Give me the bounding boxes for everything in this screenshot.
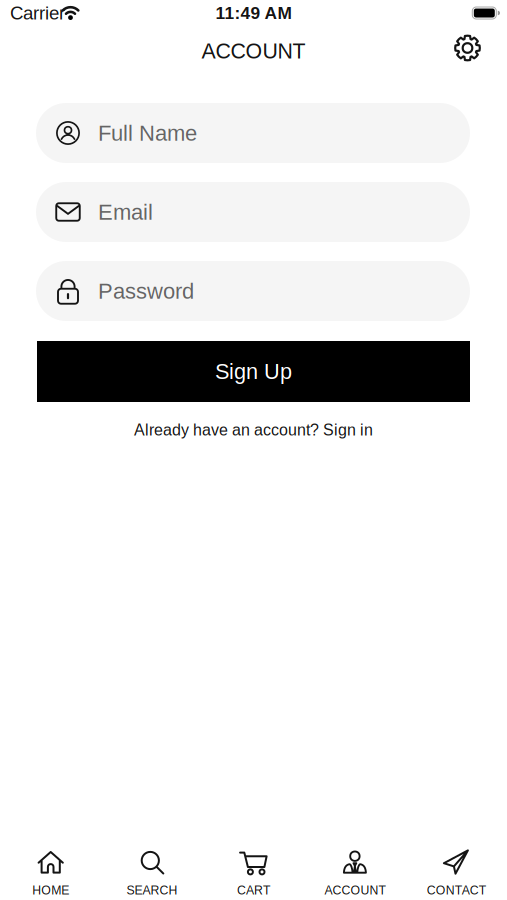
- staticText: HOME: [32, 883, 69, 897]
- staticText: ACCOUNT: [324, 883, 385, 897]
- staticText: Full Name: [98, 121, 197, 145]
- staticText: 11:49 AM: [215, 3, 291, 23]
- staticText: CONTACT: [427, 883, 486, 897]
- staticText: ACCOUNT: [201, 39, 305, 63]
- staticText: Password: [98, 279, 194, 303]
- staticText: Carrier: [10, 3, 65, 23]
- button[interactable]: ACCOUNT: [304, 844, 406, 900]
- button[interactable]: HOME: [0, 844, 101, 900]
- staticText: Already have an account? Sign in: [134, 421, 373, 439]
- button[interactable]: Full Name: [36, 103, 470, 163]
- staticText: CART: [237, 883, 270, 897]
- button[interactable]: CONTACT: [406, 844, 507, 900]
- button[interactable]: Sign Up: [37, 341, 470, 402]
- staticText: Email: [98, 200, 153, 224]
- button[interactable]: CART: [203, 844, 304, 900]
- button[interactable]: Already have an account? Sign in: [134, 421, 373, 439]
- button[interactable]: Email: [36, 182, 470, 242]
- staticText: Sign Up: [215, 359, 292, 384]
- button[interactable]: Settings: [454, 34, 481, 65]
- staticText: SEARCH: [127, 883, 178, 897]
- button[interactable]: SEARCH: [101, 844, 203, 900]
- button[interactable]: Password: [36, 261, 470, 321]
